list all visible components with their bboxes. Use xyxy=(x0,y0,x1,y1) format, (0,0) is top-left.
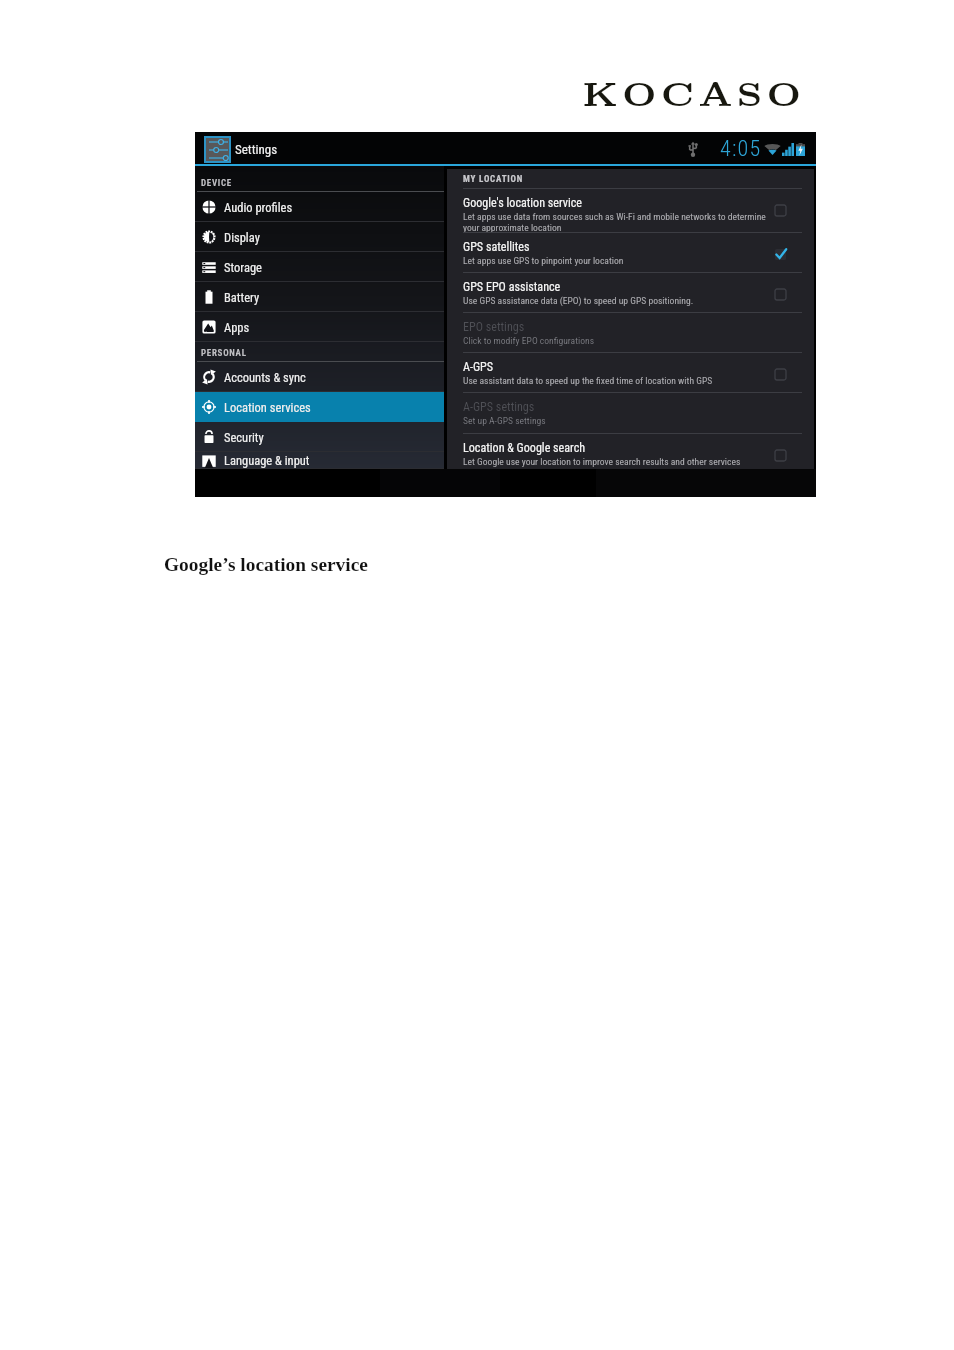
button[interactable]: Audio profiles xyxy=(195,192,444,222)
staticText: Use GPS assistance data (EPO) to speed u… xyxy=(463,295,694,306)
button[interactable]: A-GPS settings xyxy=(463,393,814,433)
staticText: Battery xyxy=(224,290,260,305)
staticText: A-GPS xyxy=(463,360,494,374)
staticText: Let Google use your location to improve … xyxy=(463,456,741,467)
staticText: Let apps use data from sources such as W… xyxy=(463,211,766,232)
staticText: MY LOCATION xyxy=(463,174,524,185)
button[interactable]: Apps xyxy=(195,312,444,342)
staticText: Set up A-GPS settings xyxy=(463,415,546,426)
button[interactable]: Toggle Google's location service xyxy=(775,205,786,216)
staticText: Settings xyxy=(235,142,278,157)
staticText: Location & Google search xyxy=(463,441,586,455)
button[interactable]: Location & Google search xyxy=(463,434,814,469)
button[interactable]: A-GPS xyxy=(463,353,814,392)
button[interactable]: GPS satellites xyxy=(463,233,814,272)
staticText: Audio profiles xyxy=(224,200,293,215)
staticText: Security xyxy=(224,430,264,445)
button[interactable]: GPS EPO assistance xyxy=(463,273,814,312)
button[interactable]: Security xyxy=(195,422,444,452)
staticText: Use assistant data to speed up the fixed… xyxy=(463,375,713,386)
staticText: Accounts & sync xyxy=(224,370,306,385)
button[interactable]: Toggle GPS satellites xyxy=(775,249,786,260)
staticText: Click to modify EPO configurations xyxy=(463,335,595,346)
button[interactable]: Accounts & sync xyxy=(195,362,444,392)
staticText: EPO settings xyxy=(463,320,525,334)
button[interactable]: Toggle GPS EPO assistance xyxy=(775,289,786,300)
staticText: PERSONAL xyxy=(201,348,247,359)
staticText: GPS satellites xyxy=(463,240,530,254)
staticText: Language & input xyxy=(224,453,310,468)
button[interactable]: Location services xyxy=(195,392,444,422)
staticText: DEVICE xyxy=(201,178,232,189)
staticText: KOCASO xyxy=(582,67,805,117)
staticText: Google’s location service xyxy=(164,554,368,575)
button[interactable]: Display xyxy=(195,222,444,252)
staticText: Let apps use GPS to pinpoint your locati… xyxy=(463,255,624,266)
staticText: GPS EPO assistance xyxy=(463,280,561,294)
button[interactable]: Storage xyxy=(195,252,444,282)
staticText: A-GPS settings xyxy=(463,400,535,414)
button[interactable]: Settings xyxy=(204,136,231,163)
button[interactable]: EPO settings xyxy=(463,313,814,352)
button[interactable]: Google's location service xyxy=(463,189,814,232)
staticText: Location services xyxy=(224,400,311,415)
staticText: 4:05 xyxy=(720,136,762,162)
button[interactable]: Toggle A-GPS xyxy=(775,369,786,380)
button[interactable]: Language & input xyxy=(195,452,444,469)
staticText: Display xyxy=(224,230,260,245)
staticText: Apps xyxy=(224,320,250,335)
staticText: Google's location service xyxy=(463,196,583,210)
button[interactable]: Battery xyxy=(195,282,444,312)
button[interactable]: Toggle Location & Google search xyxy=(775,450,786,461)
staticText: Storage xyxy=(224,260,262,275)
